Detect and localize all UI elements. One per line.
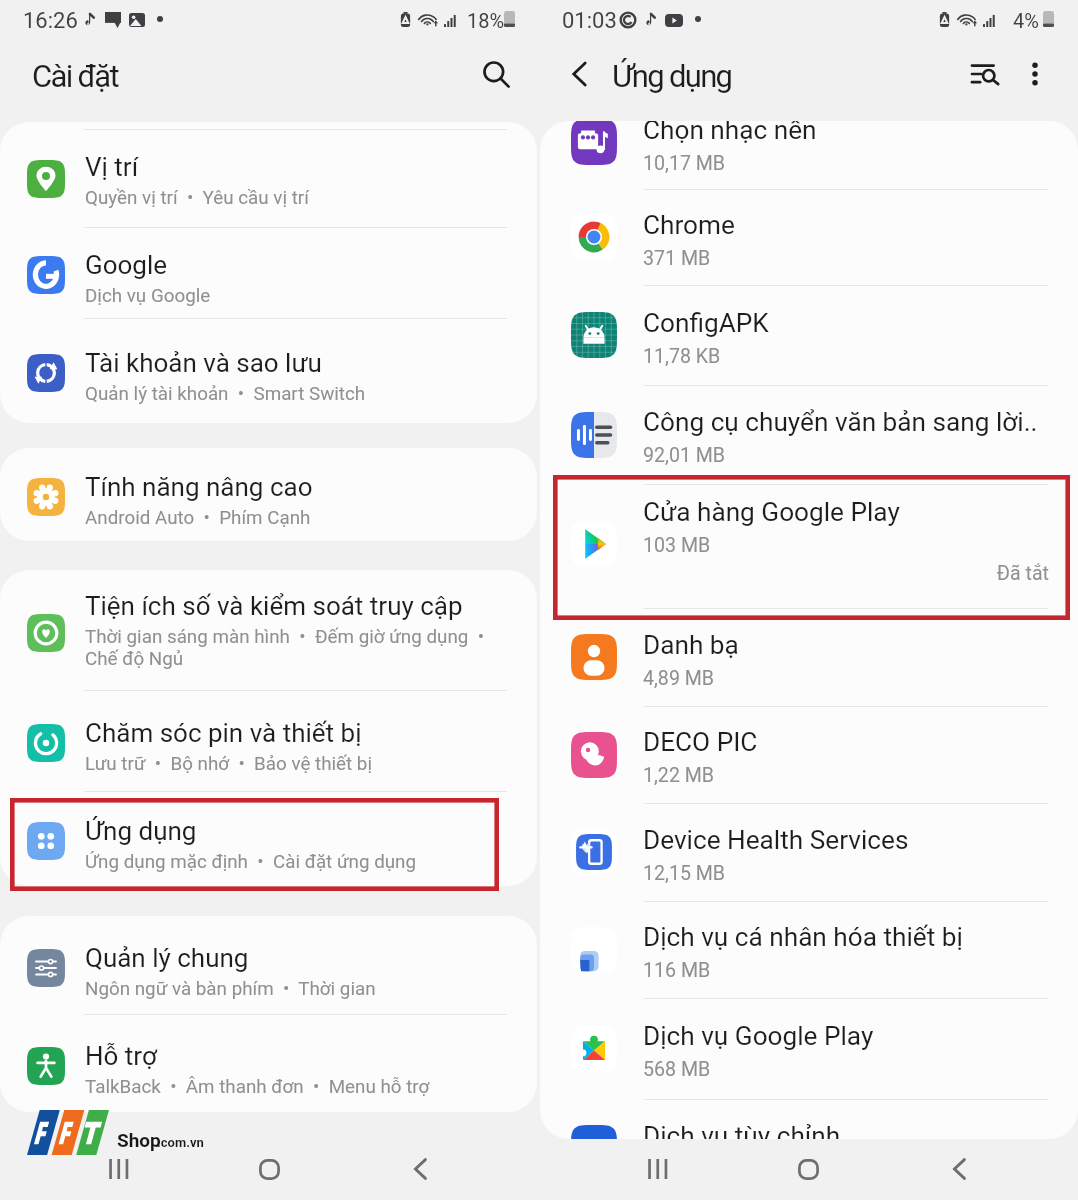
button[interactable]: Device Health Services xyxy=(540,803,1078,901)
staticText: Dịch vụ Google xyxy=(85,285,211,307)
staticText: Quyền vị trí • Yêu cầu vị trí xyxy=(85,187,309,209)
button[interactable]: Tính năng nâng cao xyxy=(0,448,533,541)
staticText: Dịch vụ tùy chỉnh xyxy=(643,1121,841,1139)
staticText: Tài khoản và sao lưu xyxy=(85,348,322,378)
button[interactable]: Tiện ích số và kiểm soát truy cập xyxy=(0,570,533,690)
staticText: 01:03 xyxy=(562,8,617,34)
button[interactable]: Dịch vụ cá nhân hóa thiết bị xyxy=(540,901,1078,998)
button[interactable]: Back xyxy=(933,1143,985,1195)
staticText: Chọn nhạc nền xyxy=(643,121,817,146)
staticText: Ứng dụng xyxy=(85,816,197,846)
staticText: Quản lý chung xyxy=(85,943,249,973)
button[interactable]: Back xyxy=(394,1143,446,1195)
staticText: 116 MB xyxy=(643,959,711,982)
staticText: .com.vn xyxy=(157,1135,204,1150)
button[interactable]: Vị trí xyxy=(0,129,533,227)
staticText: Dịch vụ Google Play xyxy=(643,1021,874,1052)
button[interactable]: Ứng dụng xyxy=(0,791,533,886)
staticText: TalkBack • Âm thanh đơn • Menu hỗ trợ xyxy=(85,1076,430,1098)
staticText: Vị trí xyxy=(85,152,139,182)
button[interactable]: ConfigAPK xyxy=(540,285,1078,385)
button[interactable]: Search xyxy=(474,52,518,96)
button[interactable]: Hỗ trợ xyxy=(0,1014,533,1112)
button[interactable]: Navigate back xyxy=(558,52,602,96)
button[interactable]: Chrome xyxy=(540,189,1078,285)
staticText: ConfigAPK xyxy=(643,308,769,339)
staticText: Cửa hàng Google Play xyxy=(643,497,900,528)
button[interactable]: Recent apps xyxy=(631,1143,683,1195)
button[interactable]: More options xyxy=(1013,52,1057,96)
staticText: Ứng dụng xyxy=(612,58,732,94)
button[interactable]: Home xyxy=(782,1143,834,1195)
staticText: Google xyxy=(85,250,168,280)
staticText: Danh bạ xyxy=(643,630,739,661)
staticText: Chăm sóc pin và thiết bị xyxy=(85,718,362,748)
staticText: Chrome xyxy=(643,210,735,241)
staticText: Tiện ích số và kiểm soát truy cập xyxy=(85,591,463,621)
staticText: 10,17 MB xyxy=(643,152,726,175)
staticText: 371 MB xyxy=(643,247,711,270)
staticText: 11,78 KB xyxy=(643,345,721,368)
button[interactable]: Công cụ chuyển văn bản sang lời.. xyxy=(540,385,1078,484)
staticText: 568 MB xyxy=(643,1058,711,1081)
button[interactable]: Dịch vụ Google Play xyxy=(540,998,1078,1099)
staticText: Ngôn ngữ và bàn phím • Thời gian xyxy=(85,978,376,1000)
staticText: Shop xyxy=(117,1129,161,1151)
staticText: Đã tắt xyxy=(540,562,1049,585)
staticText: 1,22 MB xyxy=(643,764,715,787)
staticText: 12,15 MB xyxy=(643,862,726,885)
staticText: 16:26 xyxy=(23,8,78,34)
staticText: Android Auto • Phím Cạnh xyxy=(85,507,311,529)
staticText: Device Health Services xyxy=(643,825,909,856)
staticText: 103 MB xyxy=(643,534,711,557)
button[interactable]: Google xyxy=(0,227,533,318)
staticText: Ứng dụng mặc định • Cài đặt ứng dụng xyxy=(85,851,417,873)
button[interactable]: Recent apps xyxy=(92,1143,144,1195)
staticText: Lưu trữ • Bộ nhớ • Bảo vệ thiết bị xyxy=(85,753,372,775)
button[interactable]: DECO PIC xyxy=(540,706,1078,803)
staticText: Hỗ trợ xyxy=(85,1041,157,1071)
staticText: 92,01 MB xyxy=(643,444,726,467)
staticText: Thời gian sáng màn hình • Đếm giờ ứng dụ… xyxy=(85,626,485,648)
staticText: 4% xyxy=(1013,9,1039,32)
staticText: 4,89 MB xyxy=(643,667,715,690)
button[interactable]: Quản lý chung xyxy=(0,916,533,1014)
staticText: Cài đặt xyxy=(32,58,118,94)
button[interactable]: Chọn nhạc nền xyxy=(540,121,1078,189)
staticText: Tính năng nâng cao xyxy=(85,472,313,502)
button[interactable]: Home xyxy=(243,1143,295,1195)
button[interactable]: Chăm sóc pin và thiết bị xyxy=(0,690,533,791)
staticText: Công cụ chuyển văn bản sang lời.. xyxy=(643,407,1038,438)
button[interactable]: Tài khoản và sao lưu xyxy=(0,318,533,423)
button[interactable]: Cửa hàng Google Play xyxy=(540,484,1078,608)
staticText: Quản lý tài khoản • Smart Switch xyxy=(85,383,366,405)
button[interactable]: Sort and search xyxy=(963,52,1007,96)
staticText: Dịch vụ cá nhân hóa thiết bị xyxy=(643,922,963,953)
staticText: DECO PIC xyxy=(643,727,758,758)
button[interactable]: Dịch vụ tùy chỉnh xyxy=(540,1099,1078,1139)
staticText: Chế độ Ngủ xyxy=(85,648,184,670)
button[interactable]: Danh bạ xyxy=(540,608,1078,706)
staticText: 18% xyxy=(467,9,505,32)
